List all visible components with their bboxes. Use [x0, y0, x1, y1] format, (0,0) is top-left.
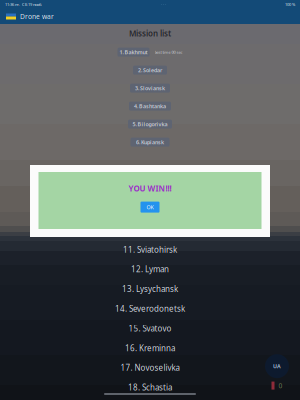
- staticText: 0: [278, 381, 282, 390]
- staticText: OK: [146, 204, 153, 211]
- staticText: · · ·: [161, 2, 166, 7]
- staticText: 14. Severodonetsk: [115, 303, 185, 314]
- staticText: Drone war: [20, 12, 54, 21]
- staticText: 18. Schastia: [128, 382, 172, 393]
- button[interactable]: 16. Kreminna: [75, 338, 225, 358]
- button[interactable]: 14. Severodonetsk: [75, 299, 225, 318]
- button[interactable]: OK: [140, 202, 159, 213]
- staticText: 5. Bilogorivka: [132, 121, 167, 128]
- staticText: best time 00 sec: [154, 49, 182, 55]
- staticText: 6. Kupiansk: [136, 139, 164, 146]
- staticText: 2. Soledar: [138, 67, 162, 74]
- button[interactable]: 15. Svatovo: [75, 318, 225, 338]
- button[interactable]: 4. Bashtanka: [129, 102, 171, 111]
- staticText: 11:36 пт. СБ 19 нояб.: [5, 2, 42, 7]
- button[interactable]: 17. Novoselivka: [75, 358, 225, 378]
- button[interactable]: Ukraine support: [265, 354, 289, 378]
- button[interactable]: 18. Schastia: [75, 378, 225, 397]
- staticText: UA: [273, 363, 281, 370]
- staticText: 15. Svatovo: [128, 323, 171, 334]
- button[interactable]: 12. Lyman: [75, 259, 225, 279]
- staticText: 13. Lysychansk: [122, 284, 178, 294]
- button[interactable]: 2. Soledar: [133, 66, 167, 75]
- button[interactable]: 11. Sviatohirsk: [75, 240, 225, 259]
- staticText: 3. Sloviansk: [135, 85, 165, 92]
- staticText: Mission list: [129, 28, 171, 39]
- button[interactable]: 13. Lysychansk: [75, 279, 225, 299]
- staticText: 4. Bashtanka: [134, 103, 166, 110]
- staticText: 11. Sviatohirsk: [123, 244, 177, 255]
- button[interactable]: 5. Bilogorivka: [128, 120, 172, 129]
- button[interactable]: 6. Kupiansk: [130, 138, 169, 147]
- button[interactable]: 3. Sloviansk: [130, 84, 170, 93]
- staticText: 17. Novoselivka: [120, 362, 179, 373]
- staticText: 1. Bakhmut: [119, 49, 147, 56]
- staticText: 100 %: [285, 2, 295, 7]
- staticText: 12. Lyman: [131, 264, 169, 274]
- button[interactable]: 1. Bakhmut: [117, 48, 149, 57]
- staticText: YOU WIN!!!: [128, 183, 171, 194]
- staticText: 16. Kreminna: [125, 343, 175, 353]
